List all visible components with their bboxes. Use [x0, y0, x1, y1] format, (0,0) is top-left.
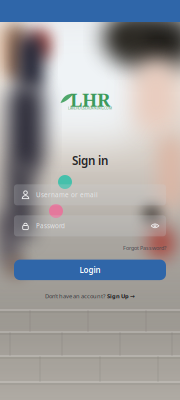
button[interactable]: Login	[14, 260, 166, 280]
staticText: LAKEHOUSERUNNING.COM	[68, 106, 112, 110]
staticText: Username or email	[36, 191, 98, 199]
staticText: Forgot Password?	[123, 244, 166, 252]
button[interactable]: Forgot Password?	[123, 244, 166, 252]
staticText: LHR	[70, 87, 110, 112]
staticText: Sign Up →	[107, 292, 135, 300]
staticText: Password	[36, 222, 65, 230]
button[interactable]: Don't have an account?	[45, 292, 135, 300]
button[interactable]: Show password	[151, 222, 159, 230]
staticText: Login	[79, 264, 100, 275]
staticText: Don't have an account?	[45, 292, 105, 300]
staticText: Sign in	[72, 152, 108, 168]
